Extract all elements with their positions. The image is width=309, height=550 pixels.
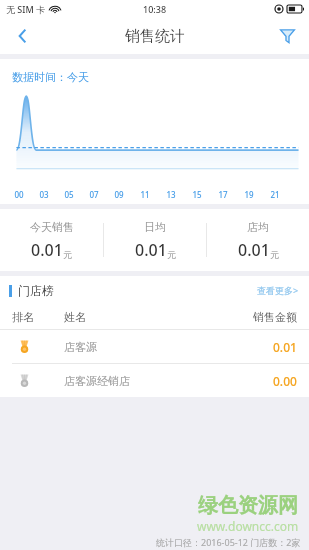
staticText: 查看更多> <box>257 284 299 296</box>
staticText: www.downcc.com <box>197 518 299 534</box>
staticText: 0.01 <box>135 239 167 261</box>
staticText: 17 <box>218 189 228 200</box>
staticText: 0.01 <box>31 239 63 261</box>
button[interactable]: 今天销售 <box>0 220 103 261</box>
staticText: 排名 <box>12 310 64 324</box>
button[interactable]: 查看更多> <box>247 276 309 304</box>
button[interactable]: 店客源 <box>0 330 309 363</box>
staticText: 13 <box>166 189 176 200</box>
staticText: 销售统计 <box>125 27 185 46</box>
staticText: 门店榜 <box>18 283 54 298</box>
staticText: 元 <box>63 249 72 260</box>
staticText: 统计口径：2016-05-12 门店数：2家 <box>156 536 301 548</box>
staticText: 0.00 <box>273 373 297 389</box>
button[interactable]: Back <box>0 18 44 54</box>
staticText: 日均 <box>144 220 166 234</box>
button[interactable]: 店客源经销店 <box>0 364 309 397</box>
staticText: 店均 <box>247 220 269 234</box>
staticText: 无 SIM 卡 <box>6 3 46 15</box>
staticText: 10:38 <box>143 3 167 15</box>
staticText: 元 <box>167 249 176 260</box>
staticText: 店客源经销店 <box>64 374 273 388</box>
staticText: 11 <box>140 189 150 200</box>
staticText: 0.01 <box>273 339 297 355</box>
staticText: 19 <box>244 189 254 200</box>
button[interactable]: 日均 <box>104 220 206 261</box>
staticText: 0.01 <box>238 239 270 261</box>
staticText: 03 <box>39 189 49 200</box>
button[interactable]: 店均 <box>207 220 309 261</box>
staticText: 今天销售 <box>30 220 74 234</box>
staticText: 00 <box>14 189 24 200</box>
staticText: 销售金额 <box>253 310 297 324</box>
staticText: 元 <box>270 249 279 260</box>
staticText: 数据时间：今天 <box>12 70 89 84</box>
staticText: 21 <box>270 189 280 200</box>
staticText: 09 <box>114 189 124 200</box>
button[interactable]: Filter <box>265 18 309 54</box>
staticText: 15 <box>192 189 202 200</box>
staticText: 姓名 <box>64 310 253 324</box>
staticText: 05 <box>64 189 74 200</box>
staticText: 绿色资源网 <box>198 493 298 518</box>
staticText: 07 <box>89 189 99 200</box>
staticText: 店客源 <box>64 340 273 354</box>
